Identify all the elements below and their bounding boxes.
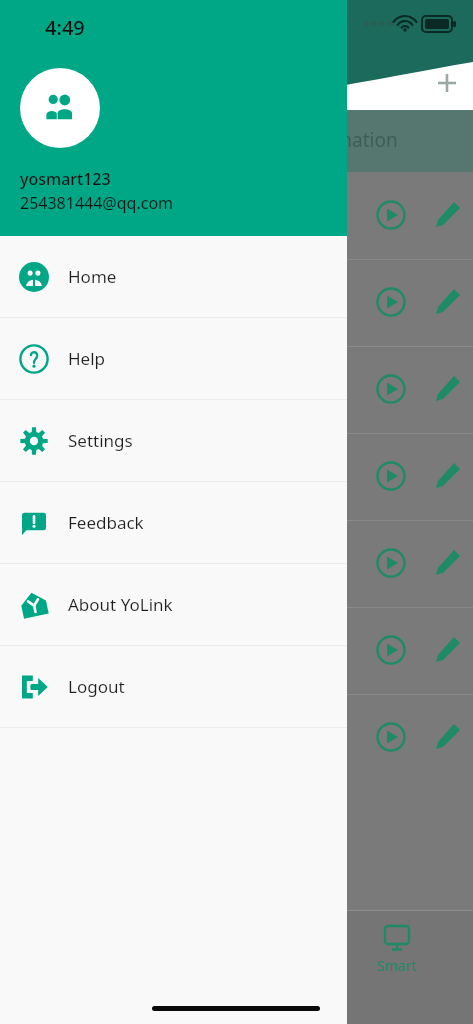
staticText: Help — [68, 347, 106, 370]
button[interactable]: Logout — [0, 646, 347, 727]
staticText: Automation — [292, 127, 398, 153]
staticText: Settings — [68, 429, 133, 452]
button[interactable] — [0, 607, 473, 694]
button[interactable]: Help — [0, 318, 347, 399]
button[interactable] — [0, 346, 473, 433]
button[interactable] — [0, 520, 473, 607]
button[interactable]: Profile — [20, 68, 100, 148]
staticText: 4:49 — [45, 14, 85, 41]
button[interactable] — [0, 694, 473, 781]
staticText: yosmart123 — [20, 168, 111, 190]
button[interactable]: About YoLink — [0, 564, 347, 645]
staticText: Home — [68, 265, 117, 288]
staticText: About YoLink — [68, 593, 173, 616]
button[interactable] — [0, 259, 473, 346]
button[interactable] — [0, 433, 473, 520]
button[interactable]: Home — [0, 236, 347, 317]
button[interactable]: Add — [432, 68, 462, 98]
staticText: 254381444@qq.com — [20, 192, 174, 214]
button[interactable]: Feedback — [0, 482, 347, 563]
button[interactable]: Settings — [0, 400, 347, 481]
button[interactable] — [0, 172, 473, 259]
staticText: Feedback — [68, 511, 144, 534]
staticText: Smart — [377, 956, 417, 975]
staticText: Logout — [68, 675, 125, 698]
button[interactable]: Smart — [366, 924, 428, 975]
